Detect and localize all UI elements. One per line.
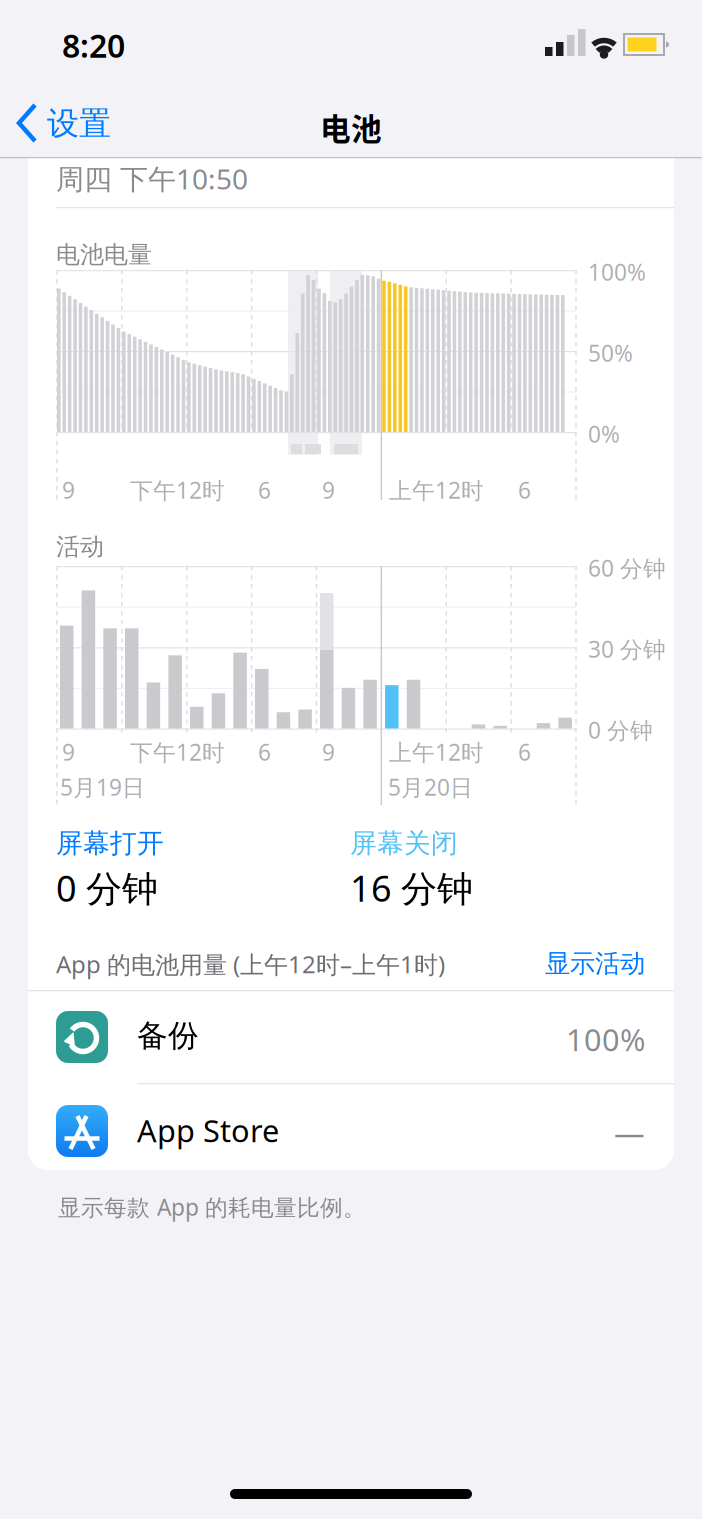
staticText: 50% (588, 338, 633, 368)
staticText: 显示每款 App 的耗电量比例。 (58, 1192, 366, 1222)
staticText: 下午12时 (130, 737, 225, 767)
staticText: 电池电量 (56, 240, 152, 269)
staticText: 电池 (320, 105, 382, 149)
staticText: 9 (322, 737, 335, 767)
staticText: 9 (62, 475, 75, 505)
staticText: 5月20日 (388, 772, 473, 802)
staticText: 60 分钟 (588, 553, 666, 583)
staticText: 9 (62, 737, 75, 767)
staticText: 30 分钟 (588, 634, 666, 664)
staticText: 上午12时 (389, 475, 484, 505)
staticText: 周四 下午10:50 (56, 160, 248, 197)
staticText: 100% (588, 257, 646, 287)
staticText: 备份 (137, 1017, 199, 1055)
staticText: 活动 (56, 532, 104, 561)
staticText: 下午12时 (130, 475, 225, 505)
button[interactable]: 备份 (28, 991, 674, 1083)
staticText: 6 (258, 475, 271, 505)
staticText: 6 (518, 737, 531, 767)
button[interactable]: 设置 (14, 88, 144, 158)
staticText: 上午12时 (389, 737, 484, 767)
staticText: 5月19日 (60, 772, 145, 802)
staticText: 屏幕打开 (56, 827, 164, 860)
staticText: 6 (518, 475, 531, 505)
staticText: App 的电池用量 (上午12时–上午1时) (56, 948, 445, 980)
staticText: 9 (322, 475, 335, 505)
button[interactable]: App Store (28, 1084, 674, 1171)
staticText: 16 分钟 (350, 864, 473, 912)
staticText: 0% (588, 419, 620, 449)
staticText: 显示活动 (545, 948, 645, 979)
staticText: 0 分钟 (56, 864, 158, 912)
staticText: — (614, 1112, 645, 1153)
staticText: 屏幕关闭 (350, 827, 458, 860)
staticText: 设置 (47, 104, 111, 143)
staticText: 6 (258, 737, 271, 767)
staticText: 8:20 (62, 24, 125, 66)
staticText: 100% (566, 1019, 645, 1060)
staticText: App Store (137, 1110, 279, 1151)
button[interactable]: 显示活动 (545, 948, 645, 979)
staticText: 0 分钟 (588, 715, 653, 745)
